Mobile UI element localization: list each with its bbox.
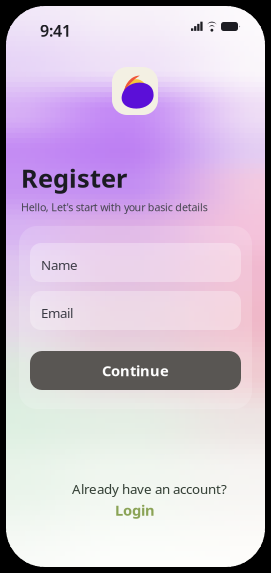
button[interactable]: Name [30,243,241,282]
staticText: Continue [102,361,169,380]
staticText: Already have an account? [72,480,227,498]
button[interactable]: Login [110,502,160,518]
staticText: Hello, Let's start with your basic detai… [21,200,208,214]
staticText: Register [21,161,127,195]
staticText: Name [41,256,78,274]
staticText: 9:41 [40,20,71,41]
staticText: Email [41,304,73,322]
button[interactable]: Email [30,291,241,330]
staticText: Login [115,500,155,520]
button[interactable]: Continue [30,351,241,390]
